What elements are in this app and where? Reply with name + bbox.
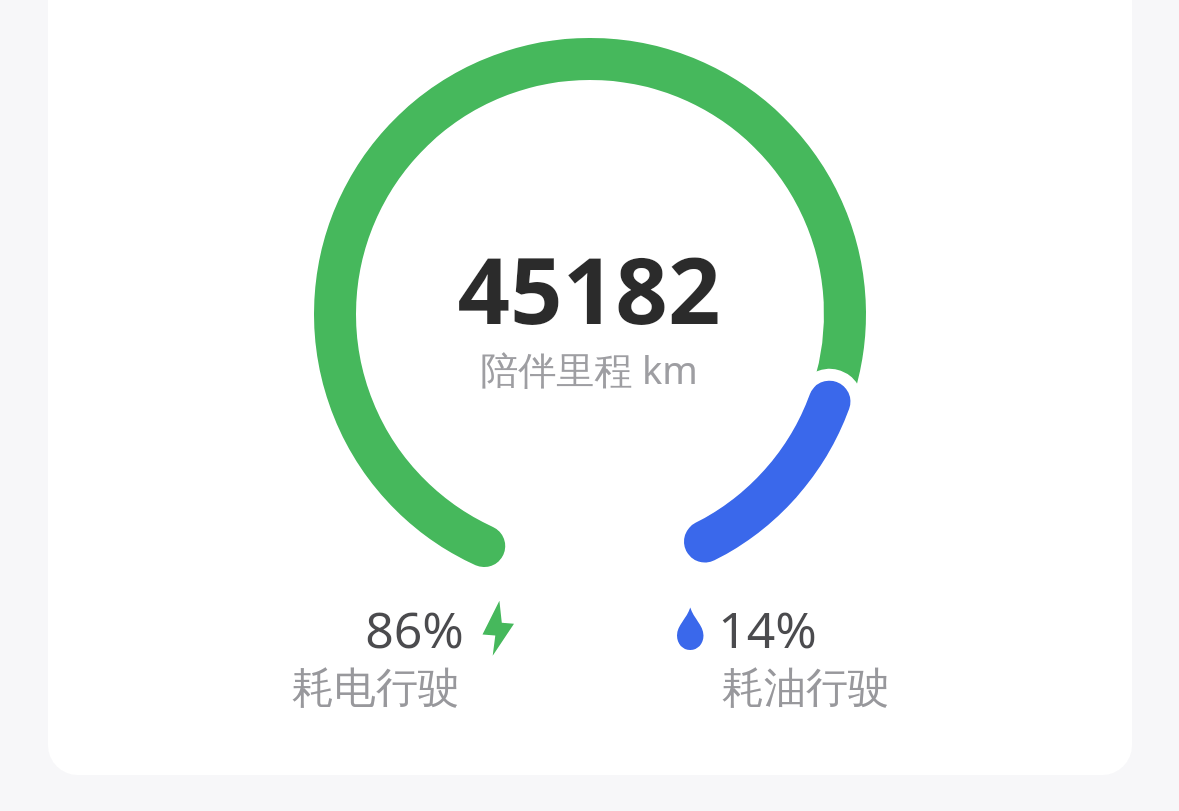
staticText: 耗电行驶: [292, 662, 460, 715]
staticText: 耗油行驶: [722, 662, 890, 715]
staticText: 45182: [457, 226, 721, 351]
staticText: 86%: [365, 595, 464, 663]
button[interactable]: [48, 0, 1132, 775]
staticText: 陪伴里程 km: [480, 343, 698, 395]
staticText: 14%: [718, 595, 817, 663]
